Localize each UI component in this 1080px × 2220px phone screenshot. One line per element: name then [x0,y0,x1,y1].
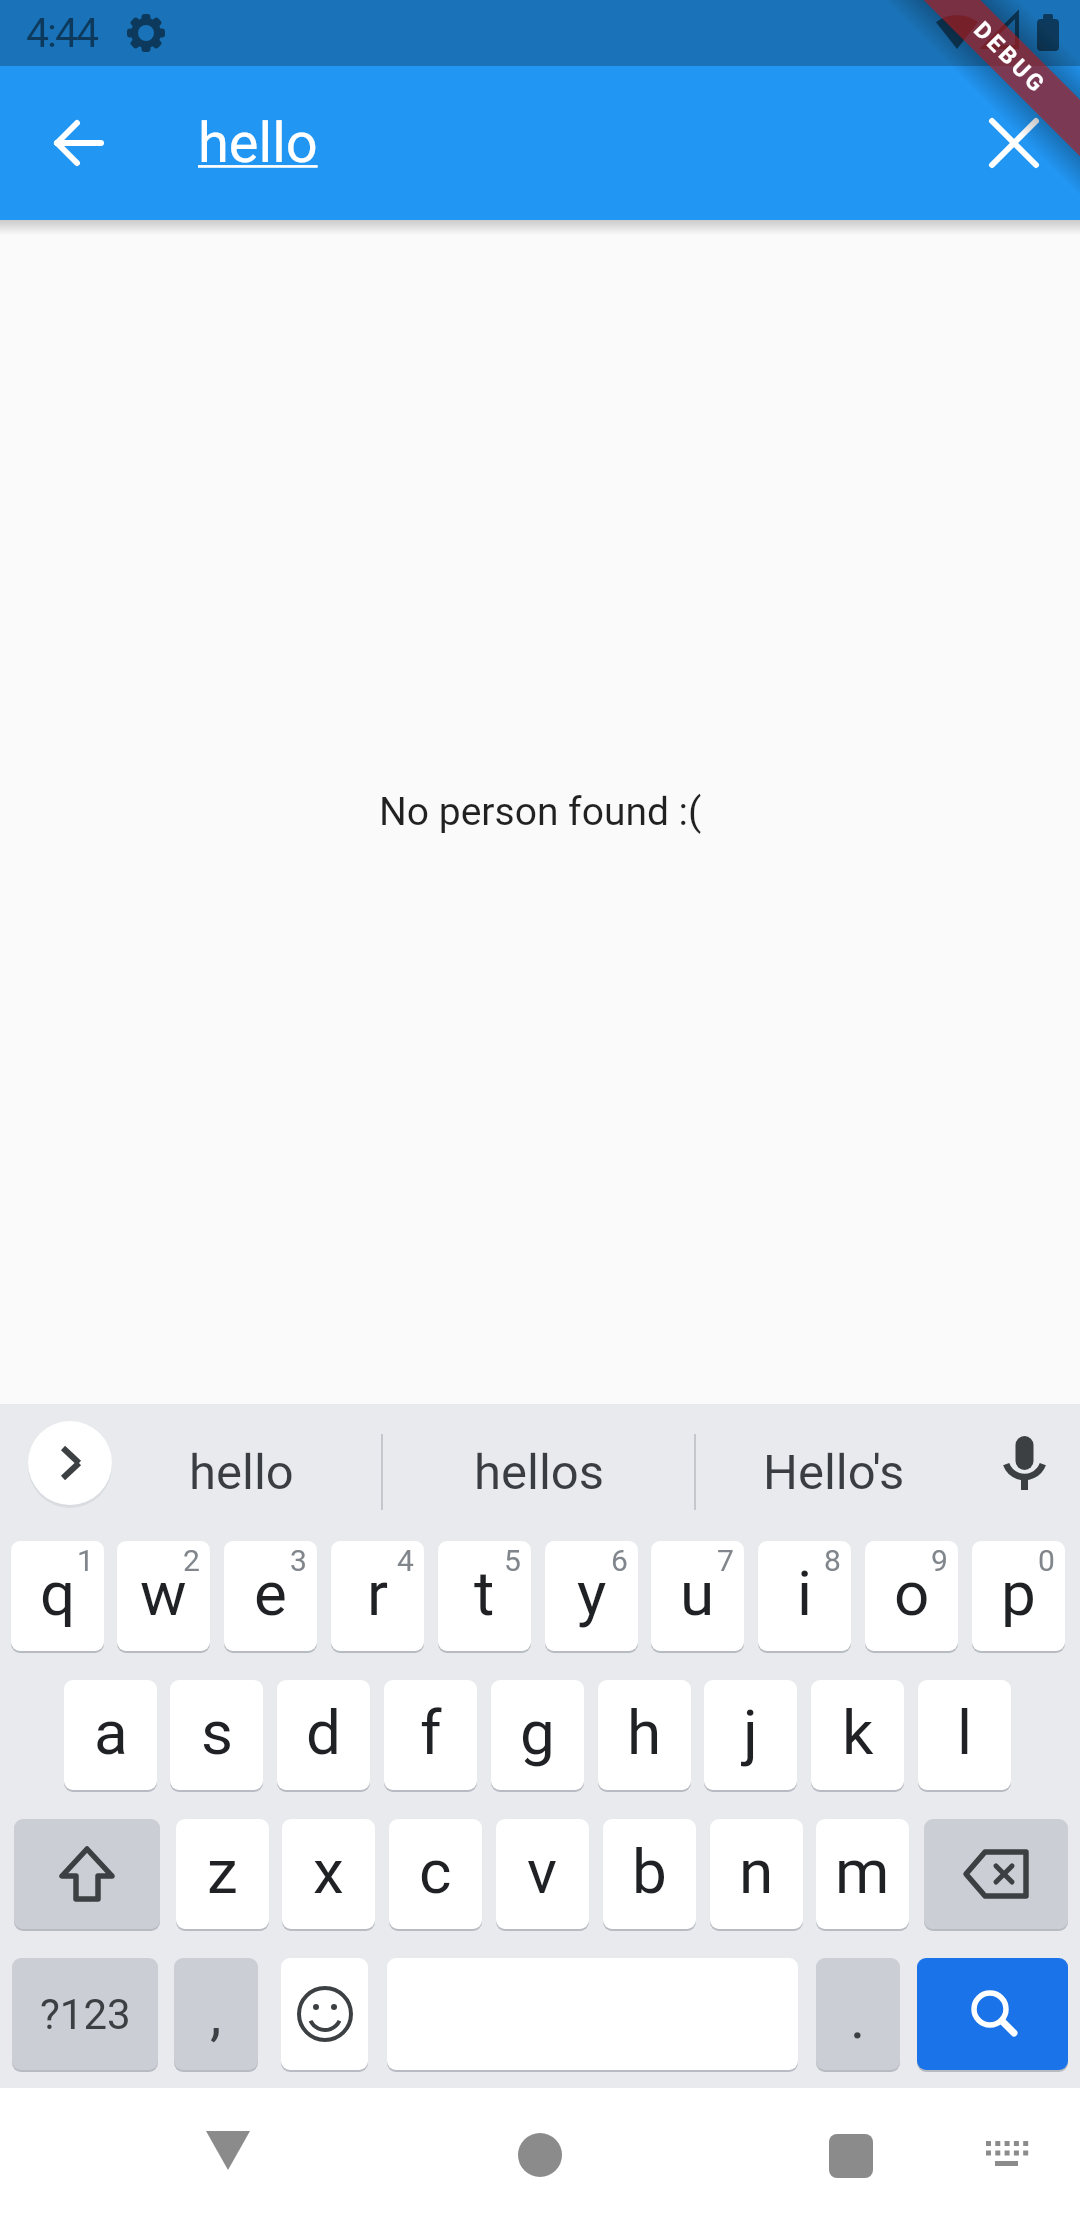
staticText: 6 [611,1543,628,1578]
staticText: 8 [824,1543,841,1578]
staticText: x [313,1835,344,1908]
button[interactable] [704,1680,797,1790]
staticText: p [1001,1557,1036,1630]
staticText: n [739,1835,774,1908]
button[interactable]: hello [106,1404,376,1540]
staticText: 7 [717,1543,734,1578]
button[interactable] [389,1819,482,1929]
button[interactable] [545,1541,638,1651]
staticText: 4 [397,1543,414,1578]
staticText: v [527,1835,558,1908]
staticText: y [577,1557,607,1630]
button[interactable] [603,1819,696,1929]
button[interactable]: hellos [384,1404,694,1540]
button[interactable] [496,1819,589,1929]
button[interactable]: ?123 [12,1958,158,2070]
button[interactable] [170,1680,263,1790]
button[interactable] [384,1680,477,1790]
staticText: 0 [1038,1543,1055,1578]
staticText: c [419,1835,452,1908]
button[interactable] [117,1541,210,1651]
button[interactable] [438,1541,531,1651]
staticText: 9 [931,1543,948,1578]
staticText: q [40,1557,76,1630]
staticText: , [210,1980,222,2048]
staticText: s [201,1696,233,1769]
staticText: a [94,1696,128,1769]
button[interactable] [14,1819,160,1929]
button[interactable] [64,1680,157,1790]
staticText: h [627,1696,662,1769]
staticText: 4:44 [26,9,98,57]
button[interactable] [55,119,103,167]
button[interactable] [196,2131,260,2179]
staticText: j [743,1696,758,1769]
button[interactable] [924,1819,1068,1929]
button[interactable] [282,1819,375,1929]
staticText: z [207,1835,238,1908]
button[interactable] [224,1541,317,1651]
staticText: 1 [77,1543,94,1578]
button[interactable] [811,1680,904,1790]
staticText: Hello's [763,1444,905,1501]
staticText: u [680,1557,715,1630]
staticText: l [957,1696,973,1769]
button[interactable] [331,1541,424,1651]
button[interactable] [11,1541,104,1651]
staticText: t [474,1557,495,1630]
button[interactable] [918,1680,1011,1790]
staticText: o [894,1557,930,1630]
button[interactable] [917,1958,1068,2070]
button[interactable]: Hello's [696,1404,972,1540]
button[interactable] [651,1541,744,1651]
button[interactable] [758,1541,851,1651]
staticText: m [835,1835,890,1908]
button[interactable] [598,1680,691,1790]
staticText: g [520,1696,555,1769]
staticText: ?123 [40,1990,131,2039]
button[interactable] [508,2134,572,2182]
button[interactable] [865,1541,958,1651]
staticText: b [632,1835,667,1908]
button[interactable] [988,117,1040,169]
staticText: 3 [290,1543,307,1578]
button[interactable] [491,1680,584,1790]
button[interactable] [281,1958,368,2070]
staticText: k [842,1696,874,1769]
staticText: d [306,1696,341,1769]
staticText: 2 [183,1543,200,1578]
button[interactable] [819,2134,883,2182]
staticText: . [850,1984,866,2052]
staticText: hello [198,110,318,176]
staticText: hello [189,1444,294,1501]
staticText: r [367,1557,389,1630]
button[interactable] [28,1421,112,1505]
staticText: 5 [504,1543,521,1578]
staticText: e [254,1557,287,1630]
button[interactable]: , [174,1958,258,2070]
staticText: f [420,1696,442,1769]
button[interactable]: . [816,1958,900,2070]
staticText: w [140,1557,187,1630]
button[interactable] [176,1819,269,1929]
staticText: hellos [474,1444,605,1501]
button[interactable] [277,1680,370,1790]
button[interactable] [972,1541,1065,1651]
button[interactable] [710,1819,803,1929]
staticText: No person found :( [379,789,702,835]
button[interactable] [975,2125,1039,2181]
staticText: i [797,1557,813,1630]
button[interactable] [816,1819,909,1929]
